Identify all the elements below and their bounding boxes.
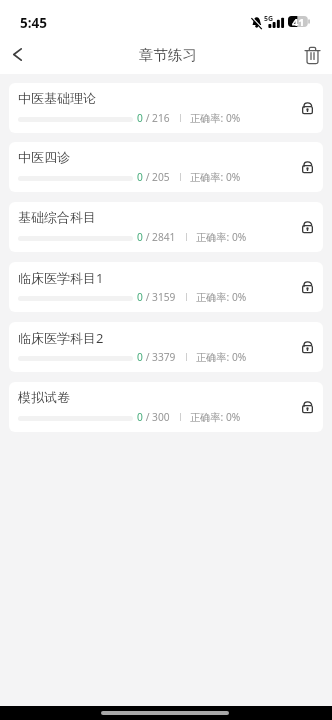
staticText: 5G: [264, 14, 274, 24]
staticText: 临床医学科目2: [18, 329, 104, 347]
button[interactable]: Back: [0, 32, 36, 74]
button[interactable]: 临床医学科目1: [9, 262, 323, 312]
button[interactable]: Unlock: [296, 275, 318, 297]
staticText: 正确率: 0%: [196, 290, 247, 304]
staticText: 0: [137, 170, 143, 184]
staticText: 正确率: 0%: [190, 111, 241, 125]
staticText: 0: [137, 350, 143, 364]
staticText: / 205: [143, 170, 170, 184]
button[interactable]: Unlock: [296, 96, 318, 118]
staticText: / 3159: [143, 290, 176, 304]
button[interactable]: 临床医学科目2: [9, 322, 323, 372]
staticText: 正确率: 0%: [190, 410, 241, 424]
staticText: 中医基础理论: [18, 90, 96, 106]
button[interactable]: 模拟试卷: [9, 382, 323, 432]
button[interactable]: Unlock: [296, 395, 318, 417]
button[interactable]: 中医基础理论: [9, 83, 323, 133]
staticText: / 2841: [143, 230, 176, 244]
staticText: 0: [137, 111, 143, 125]
staticText: 临床医学科目1: [18, 269, 104, 287]
staticText: / 300: [143, 410, 170, 424]
staticText: 模拟试卷: [18, 389, 70, 405]
staticText: 正确率: 0%: [196, 350, 247, 364]
staticText: 章节练习: [139, 46, 197, 64]
staticText: 中医四诊: [18, 149, 70, 165]
staticText: 正确率: 0%: [196, 230, 247, 244]
staticText: / 3379: [143, 350, 176, 364]
button[interactable]: Unlock: [296, 335, 318, 357]
staticText: 0: [137, 290, 143, 304]
staticText: 正确率: 0%: [190, 170, 241, 184]
button[interactable]: Unlock: [296, 215, 318, 237]
staticText: 0: [137, 230, 143, 244]
staticText: 41: [292, 15, 305, 26]
staticText: 5:45: [20, 14, 47, 32]
button[interactable]: 基础综合科目: [9, 202, 323, 252]
button[interactable]: 中医四诊: [9, 142, 323, 192]
button[interactable]: Unlock: [296, 155, 318, 177]
staticText: 基础综合科目: [18, 209, 96, 225]
button[interactable]: Delete: [292, 33, 332, 75]
staticText: 0: [137, 410, 143, 424]
staticText: / 216: [143, 111, 170, 125]
